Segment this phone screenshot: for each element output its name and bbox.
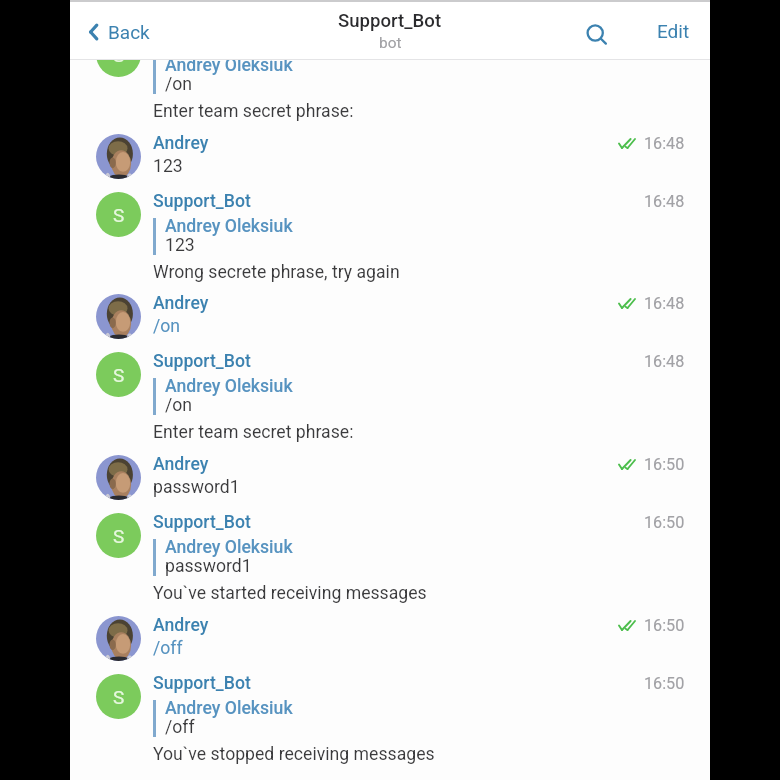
- button[interactable]: Search: [582, 15, 618, 51]
- staticText: 16:48: [644, 352, 685, 371]
- staticText: /off: [165, 717, 195, 738]
- staticText: Support_Bot: [153, 351, 251, 372]
- staticText: Andrey Oleksiuk: [165, 55, 293, 76]
- staticText: S: [113, 686, 125, 708]
- staticText: Andrey Oleksiuk: [165, 698, 293, 719]
- staticText: Andrey Oleksiuk: [165, 376, 293, 397]
- other: Read: [618, 459, 636, 470]
- button[interactable]: Support_Bot profile photo: [96, 352, 141, 397]
- staticText: Support_Bot: [338, 10, 442, 32]
- button[interactable]: Andrey profile photo: [70, 613, 710, 667]
- button[interactable]: Support_Bot profile photo: [96, 674, 141, 719]
- staticText: 16:50: [644, 674, 685, 693]
- button[interactable]: Andrey profile photo: [96, 455, 141, 500]
- staticText: Andrey Oleksiuk: [165, 216, 293, 237]
- staticText: Support_Bot: [153, 512, 251, 533]
- button[interactable]: Andrey profile photo: [70, 291, 710, 345]
- staticText: 16:48: [644, 294, 685, 313]
- button[interactable]: Andrey profile photo: [70, 131, 710, 185]
- other: Read: [618, 620, 636, 631]
- staticText: 123: [165, 235, 195, 256]
- button[interactable]: Back: [84, 13, 155, 51]
- staticText: /off: [153, 638, 183, 659]
- button[interactable]: Support_Bot profile photo: [96, 513, 141, 558]
- staticText: Back: [108, 21, 150, 43]
- staticText: password1: [153, 477, 240, 498]
- button[interactable]: Andrey profile photo: [96, 294, 141, 339]
- staticText: Support_Bot: [153, 673, 251, 694]
- button[interactable]: Support_Bot profile photo: [96, 192, 141, 237]
- staticText: Andrey Oleksiuk: [165, 537, 293, 558]
- button[interactable]: Support_Bot profile photo: [70, 28, 710, 128]
- staticText: S: [113, 204, 125, 226]
- button[interactable]: Support_Bot profile photo: [70, 189, 710, 289]
- button[interactable]: Andrey profile photo: [96, 616, 141, 661]
- staticText: Andrey: [153, 615, 209, 636]
- staticText: 123: [153, 156, 183, 177]
- staticText: /on: [165, 74, 193, 95]
- button[interactable]: Andrey profile photo: [96, 134, 141, 179]
- other: Read: [618, 138, 636, 149]
- staticText: Support_Bot: [153, 191, 251, 212]
- button[interactable]: Support_Bot profile photo: [70, 510, 710, 610]
- button[interactable]: Support_Bot profile photo: [70, 671, 710, 771]
- staticText: password1: [165, 556, 252, 577]
- staticText: Andrey: [153, 454, 209, 475]
- button[interactable]: Support_Bot profile photo: [70, 349, 710, 449]
- other: Read: [618, 298, 636, 309]
- staticText: 16:50: [644, 455, 685, 474]
- staticText: 16:48: [644, 134, 685, 153]
- staticText: Andrey: [153, 293, 209, 314]
- staticText: bot: [379, 34, 402, 52]
- button[interactable]: Edit: [651, 14, 696, 48]
- staticText: 16:48: [644, 192, 685, 211]
- staticText: Edit: [657, 20, 690, 42]
- staticText: 16:50: [644, 616, 685, 635]
- staticText: 16:50: [644, 513, 685, 532]
- button[interactable]: Andrey profile photo: [70, 452, 710, 506]
- staticText: Wrong secrete phrase, try again: [153, 262, 400, 283]
- button[interactable]: Support_Bot profile photo: [96, 32, 141, 77]
- staticText: You`ve started receiving messages: [153, 583, 427, 604]
- staticText: /on: [153, 316, 181, 337]
- staticText: Enter team secret phrase:: [153, 422, 354, 443]
- staticText: S: [113, 364, 125, 386]
- staticText: S: [113, 525, 125, 547]
- staticText: S: [113, 44, 125, 66]
- staticText: Enter team secret phrase:: [153, 101, 354, 122]
- staticText: Andrey: [153, 133, 209, 154]
- staticText: /on: [165, 395, 193, 416]
- staticText: You`ve stopped receiving messages: [153, 744, 435, 765]
